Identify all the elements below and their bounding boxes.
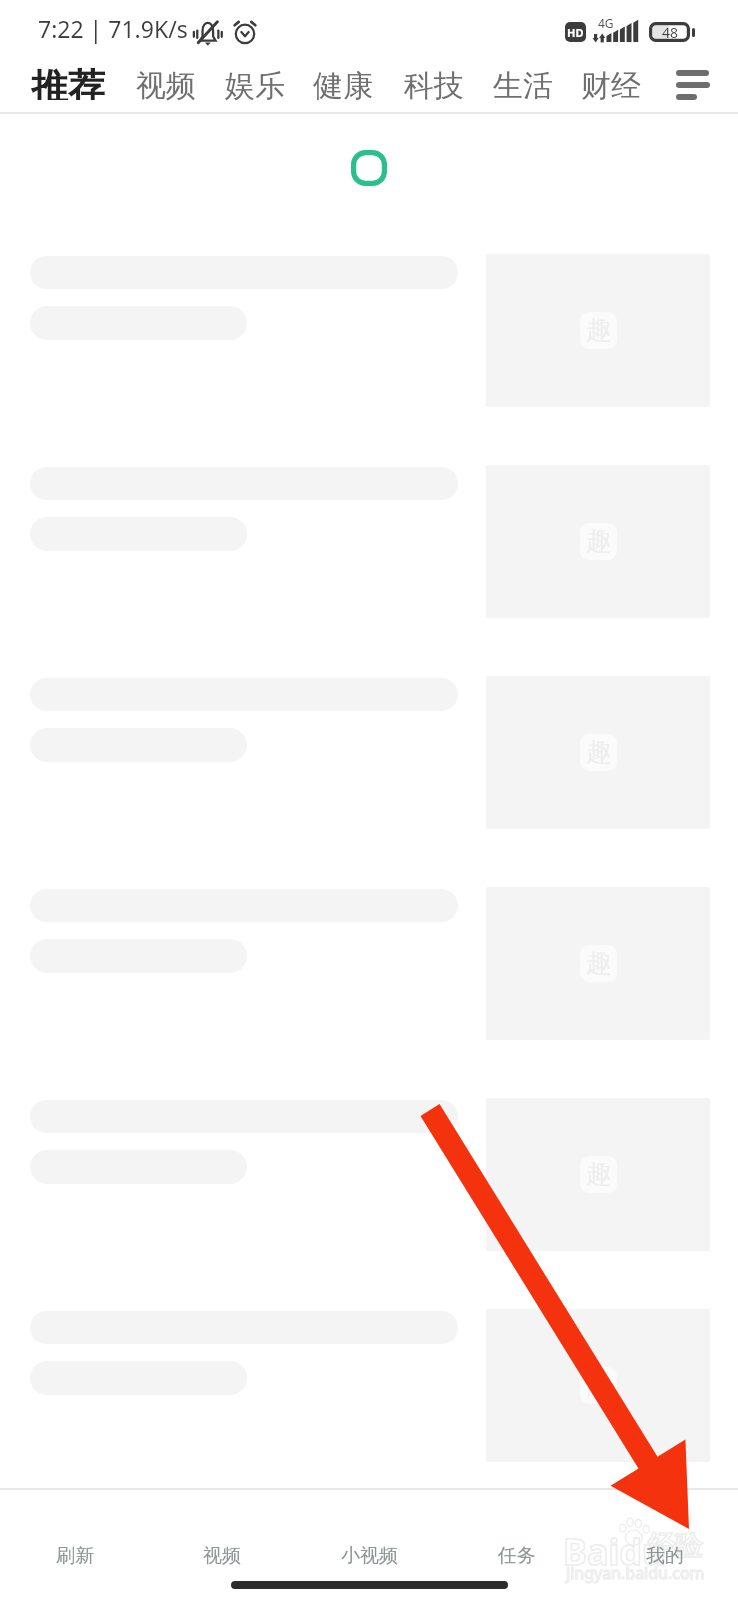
button[interactable]: 生活 bbox=[479, 58, 567, 112]
staticText: 视频 bbox=[203, 1544, 241, 1568]
staticText: 生活 bbox=[493, 67, 553, 103]
button[interactable]: 健康 bbox=[299, 58, 387, 112]
staticText: 经验 bbox=[648, 1529, 702, 1563]
button[interactable]: 推荐 bbox=[17, 55, 119, 109]
staticText: 视频 bbox=[136, 67, 196, 103]
button[interactable]: 刷新 bbox=[1, 1490, 148, 1590]
staticText: 财经 bbox=[581, 67, 641, 103]
button[interactable]: 趣 bbox=[0, 672, 738, 825]
button[interactable]: 我的 bbox=[591, 1490, 738, 1590]
staticText: 趣 bbox=[586, 314, 612, 347]
staticText: 趣 bbox=[586, 1158, 612, 1191]
button[interactable]: 视频 bbox=[122, 58, 210, 112]
button[interactable]: 趣 bbox=[0, 250, 738, 403]
staticText: 任务 bbox=[498, 1544, 536, 1568]
staticText: 健康 bbox=[313, 67, 373, 103]
button[interactable]: 视频 bbox=[148, 1490, 295, 1590]
staticText: 趣 bbox=[586, 947, 612, 980]
staticText: jingyan.baidu.com bbox=[566, 1562, 705, 1584]
button[interactable]: 趣 bbox=[0, 883, 738, 1036]
button[interactable]: 趣 bbox=[0, 1094, 738, 1247]
button[interactable]: 趣 bbox=[0, 1305, 738, 1458]
staticText: 小视频 bbox=[341, 1544, 398, 1568]
button[interactable]: 趣 bbox=[0, 461, 738, 614]
staticText: 4G bbox=[598, 15, 614, 31]
button[interactable]: 娱乐 bbox=[211, 58, 299, 112]
button[interactable]: Menu bbox=[664, 58, 722, 112]
button[interactable]: 小视频 bbox=[296, 1490, 443, 1590]
button[interactable]: 任务 bbox=[443, 1490, 590, 1590]
staticText: 趣 bbox=[586, 525, 612, 558]
button[interactable]: 趣 bbox=[0, 1516, 738, 1600]
staticText: 我的 bbox=[646, 1544, 684, 1568]
staticText: 刷新 bbox=[56, 1544, 94, 1568]
staticText: 科技 bbox=[404, 67, 464, 103]
staticText: 7:22 | 71.9K/s bbox=[38, 13, 188, 44]
staticText: 推荐 bbox=[31, 64, 105, 100]
staticText: HD bbox=[567, 25, 584, 40]
staticText: 趣 bbox=[586, 1369, 612, 1402]
staticText: 48 bbox=[662, 23, 679, 42]
button[interactable]: 科技 bbox=[390, 58, 478, 112]
staticText: 娱乐 bbox=[225, 67, 285, 103]
staticText: 趣 bbox=[586, 1546, 612, 1579]
staticText: 趣 bbox=[586, 736, 612, 769]
button[interactable]: 财经 bbox=[567, 58, 655, 112]
staticText: Baidu bbox=[563, 1527, 666, 1576]
